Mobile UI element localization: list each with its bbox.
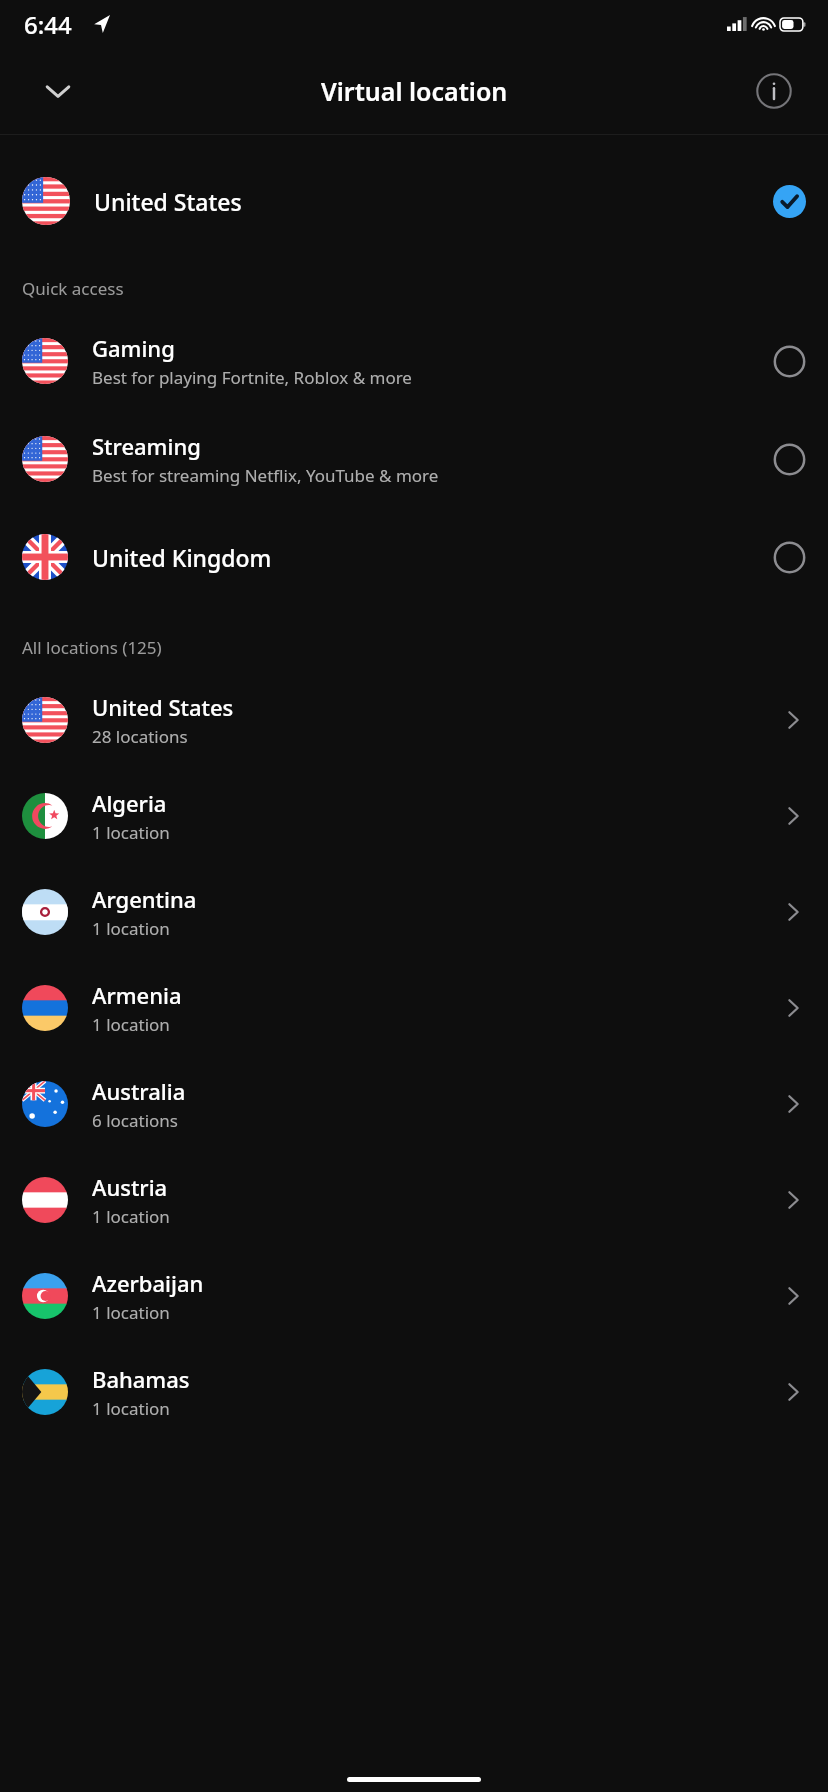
button[interactable]: Armenia [0,969,828,1047]
staticText: Virtual location [321,74,508,108]
staticText: All locations (125) [22,636,162,659]
button[interactable]: Austria [0,1161,828,1239]
button[interactable]: Info [752,69,796,113]
staticText: Austria [92,1172,168,1202]
button[interactable]: United States [0,681,828,759]
staticText: 1 location [92,1205,170,1228]
staticText: 1 location [92,1013,170,1036]
button[interactable]: Gaming [0,322,828,400]
staticText: Azerbaijan [92,1268,204,1298]
staticText: Armenia [92,980,182,1010]
staticText: United States [94,186,242,217]
button[interactable]: Algeria [0,777,828,855]
staticText: 6 locations [92,1109,178,1132]
staticText: Quick access [22,277,124,300]
button[interactable]: Bahamas [0,1353,828,1431]
staticText: 1 location [92,821,170,844]
staticText: 6:44 [24,8,72,41]
button[interactable]: Argentina [0,873,828,951]
staticText: Best for streaming Netflix, YouTube & mo… [92,464,439,487]
staticText: Argentina [92,884,197,914]
staticText: United Kingdom [92,542,272,573]
staticText: Australia [92,1076,186,1106]
staticText: 1 location [92,1301,170,1324]
button[interactable]: United Kingdom [0,518,828,596]
staticText: Streaming [92,431,201,461]
staticText: 28 locations [92,725,188,748]
button[interactable]: United States [0,161,828,241]
button[interactable]: Streaming [0,420,828,498]
staticText: United States [92,692,234,722]
staticText: 1 location [92,917,170,940]
staticText: Algeria [92,788,167,818]
button[interactable]: Australia [0,1065,828,1143]
staticText: Best for playing Fortnite, Roblox & more [92,366,412,389]
staticText: 1 location [92,1397,170,1420]
button[interactable]: Collapse [36,69,80,113]
staticText: Bahamas [92,1364,190,1394]
button[interactable]: Azerbaijan [0,1257,828,1335]
staticText: Gaming [92,333,175,363]
